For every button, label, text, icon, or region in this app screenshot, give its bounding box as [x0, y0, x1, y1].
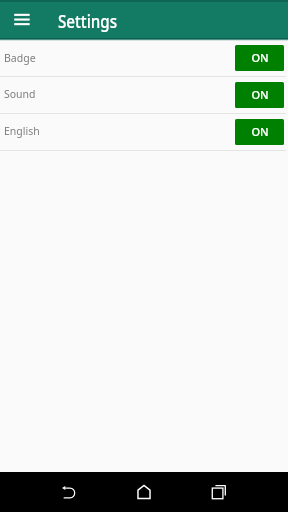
button[interactable]: Sound [0, 77, 288, 114]
staticText: Badge [4, 51, 36, 65]
button[interactable]: English [0, 114, 288, 151]
button[interactable]: Back [54, 477, 84, 507]
staticText: ON [251, 87, 269, 102]
button[interactable]: ON [235, 119, 284, 145]
button[interactable]: Open navigation drawer [0, 0, 38, 38]
staticText: ON [251, 50, 269, 65]
staticText: Settings [58, 8, 118, 33]
button[interactable]: Recent apps [204, 477, 234, 507]
button[interactable]: Home [129, 477, 159, 507]
staticText: ON [251, 124, 269, 139]
staticText: Sound [4, 87, 36, 101]
button[interactable]: ON [235, 82, 284, 108]
button[interactable]: Badge [0, 41, 288, 77]
button[interactable]: ON [235, 45, 284, 71]
staticText: English [4, 124, 40, 138]
